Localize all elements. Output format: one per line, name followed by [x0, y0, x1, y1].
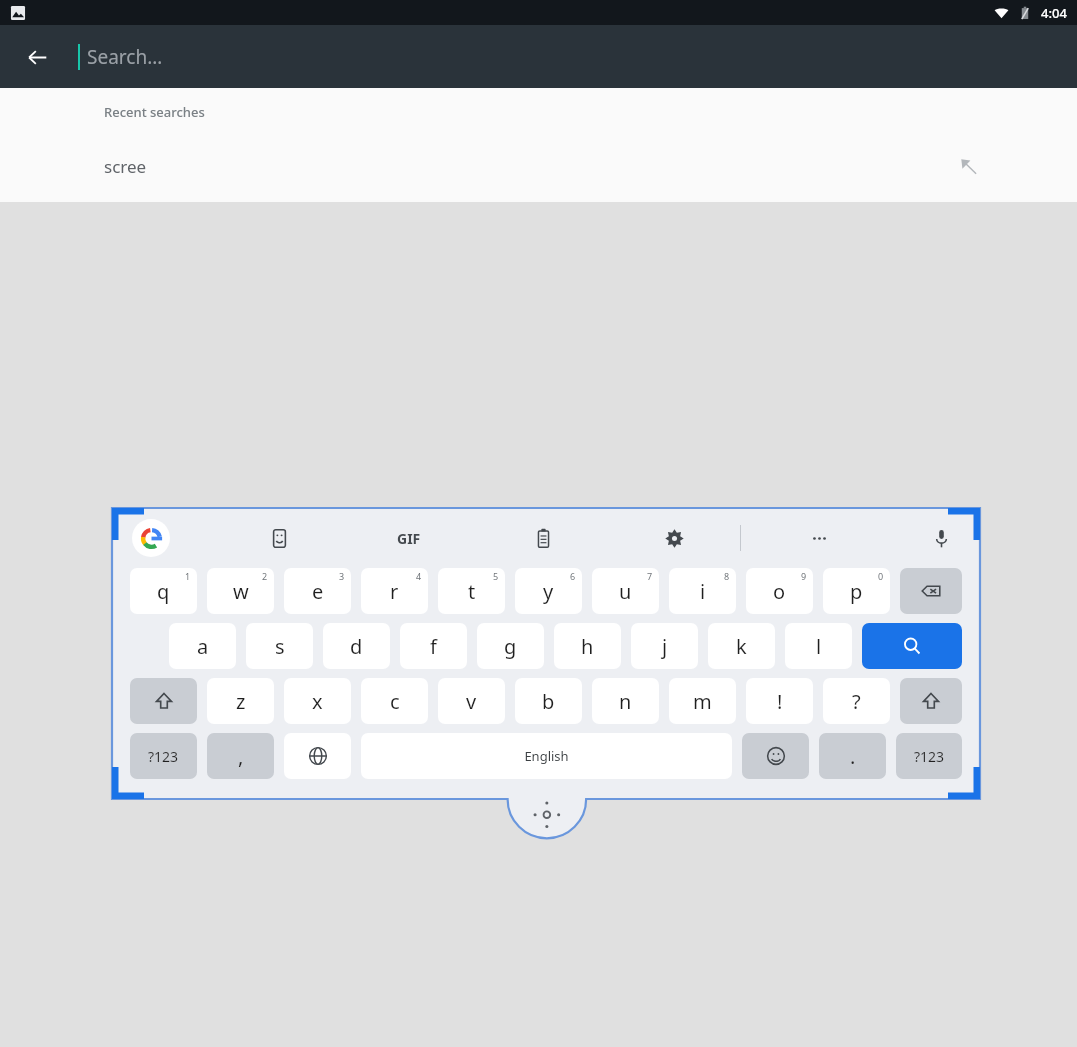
staticText: u	[619, 578, 632, 605]
staticText: ?	[852, 688, 861, 715]
staticText: ?123	[914, 747, 945, 766]
button[interactable]: Google Search	[132, 519, 170, 557]
staticText: f	[430, 633, 437, 660]
button[interactable]: a	[169, 623, 236, 669]
staticText: scree	[104, 155, 147, 178]
staticText: 7	[647, 570, 653, 582]
staticText: 5	[493, 570, 499, 582]
button[interactable]: ?	[823, 678, 890, 724]
staticText: h	[581, 633, 594, 660]
staticText: 8	[724, 570, 730, 582]
staticText: p	[850, 578, 863, 605]
staticText: x	[312, 688, 323, 715]
button[interactable]: r	[361, 568, 428, 614]
staticText: Search…	[87, 44, 163, 70]
staticText: a	[197, 633, 209, 660]
button[interactable]: Search	[862, 623, 962, 669]
staticText: 2	[262, 570, 268, 582]
button[interactable]: Insert suggestion	[951, 149, 985, 183]
button[interactable]: scree	[0, 135, 1077, 197]
button[interactable]: z	[207, 678, 274, 724]
staticText: b	[542, 688, 555, 715]
button[interactable]: u	[592, 568, 659, 614]
staticText: English	[524, 747, 569, 765]
button[interactable]: h	[554, 623, 621, 669]
button[interactable]: x	[284, 678, 351, 724]
staticText: Recent searches	[104, 103, 205, 121]
button[interactable]: t	[438, 568, 505, 614]
staticText: o	[773, 578, 786, 605]
button[interactable]: f	[400, 623, 467, 669]
button[interactable]: Voice input	[920, 517, 962, 559]
button[interactable]: Emoji	[742, 733, 809, 779]
button[interactable]: k	[708, 623, 775, 669]
button[interactable]: .	[819, 733, 886, 779]
button[interactable]: n	[592, 678, 659, 724]
button[interactable]: w	[207, 568, 274, 614]
staticText: d	[350, 633, 363, 660]
button[interactable]: l	[785, 623, 852, 669]
staticText: .	[850, 743, 856, 770]
button[interactable]: !	[746, 678, 813, 724]
button[interactable]: Backspace	[900, 568, 962, 614]
staticText: GIF	[397, 529, 421, 548]
staticText: 9	[801, 570, 807, 582]
staticText: e	[312, 578, 324, 605]
button[interactable]: e	[284, 568, 351, 614]
staticText: !	[777, 688, 783, 715]
button[interactable]: More options	[798, 517, 840, 559]
staticText: 4	[416, 570, 422, 582]
button[interactable]: Shift	[130, 678, 197, 724]
staticText: 1	[185, 570, 191, 582]
staticText: r	[390, 578, 399, 605]
button[interactable]: i	[669, 568, 736, 614]
staticText: 0	[878, 570, 884, 582]
button[interactable]: q	[130, 568, 197, 614]
staticText: y	[543, 578, 554, 605]
button[interactable]: s	[246, 623, 313, 669]
staticText: j	[662, 633, 668, 660]
button[interactable]: p	[823, 568, 890, 614]
button[interactable]: Shift	[900, 678, 962, 724]
staticText: c	[390, 688, 400, 715]
button[interactable]: j	[631, 623, 698, 669]
button[interactable]: Stickers	[258, 517, 300, 559]
staticText: g	[504, 633, 517, 660]
button[interactable]: m	[669, 678, 736, 724]
button[interactable]: d	[323, 623, 390, 669]
button[interactable]: v	[438, 678, 505, 724]
button[interactable]: ?123	[896, 733, 962, 779]
staticText: 6	[570, 570, 576, 582]
button[interactable]: Clipboard	[522, 517, 564, 559]
staticText: n	[619, 688, 632, 715]
staticText: z	[236, 688, 246, 715]
staticText: w	[233, 578, 249, 605]
button[interactable]: English	[361, 733, 732, 779]
button[interactable]: GIF	[388, 517, 430, 559]
button[interactable]: b	[515, 678, 582, 724]
button[interactable]: c	[361, 678, 428, 724]
staticText: m	[693, 688, 712, 715]
staticText: l	[816, 633, 822, 660]
button[interactable]: Change language	[284, 733, 351, 779]
button[interactable]: Settings	[653, 517, 695, 559]
staticText: ,	[238, 743, 244, 770]
staticText: s	[275, 633, 285, 660]
staticText: 3	[339, 570, 345, 582]
staticText: 4:04	[1041, 4, 1067, 22]
staticText: ?123	[148, 747, 179, 766]
button[interactable]: ,	[207, 733, 274, 779]
staticText: q	[157, 578, 170, 605]
button[interactable]: g	[477, 623, 544, 669]
staticText: i	[700, 578, 706, 605]
staticText: t	[468, 578, 476, 605]
button[interactable]: ?123	[130, 733, 197, 779]
button[interactable]: o	[746, 568, 813, 614]
staticText: v	[466, 688, 477, 715]
button[interactable]: Back	[18, 38, 56, 76]
button[interactable]: y	[515, 568, 582, 614]
staticText: k	[736, 633, 747, 660]
